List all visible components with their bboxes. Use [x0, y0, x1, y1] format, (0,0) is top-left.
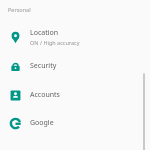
- other: Location: [0, 31, 30, 44]
- staticText: Location: [30, 28, 59, 38]
- button[interactable]: Accounts: [0, 84, 150, 106]
- button[interactable]: Google: [0, 112, 150, 134]
- staticText: Security: [30, 61, 57, 71]
- staticText: Accounts: [30, 90, 60, 100]
- staticText: Personal: [8, 6, 31, 13]
- button[interactable]: Security: [0, 55, 150, 77]
- button[interactable]: Location: [0, 25, 150, 49]
- staticText: Google: [30, 118, 54, 128]
- other: Accounts: [0, 89, 30, 102]
- other: Google: [0, 117, 30, 130]
- staticText: ON / High accuracy: [30, 39, 80, 46]
- other: Security: [0, 60, 30, 73]
